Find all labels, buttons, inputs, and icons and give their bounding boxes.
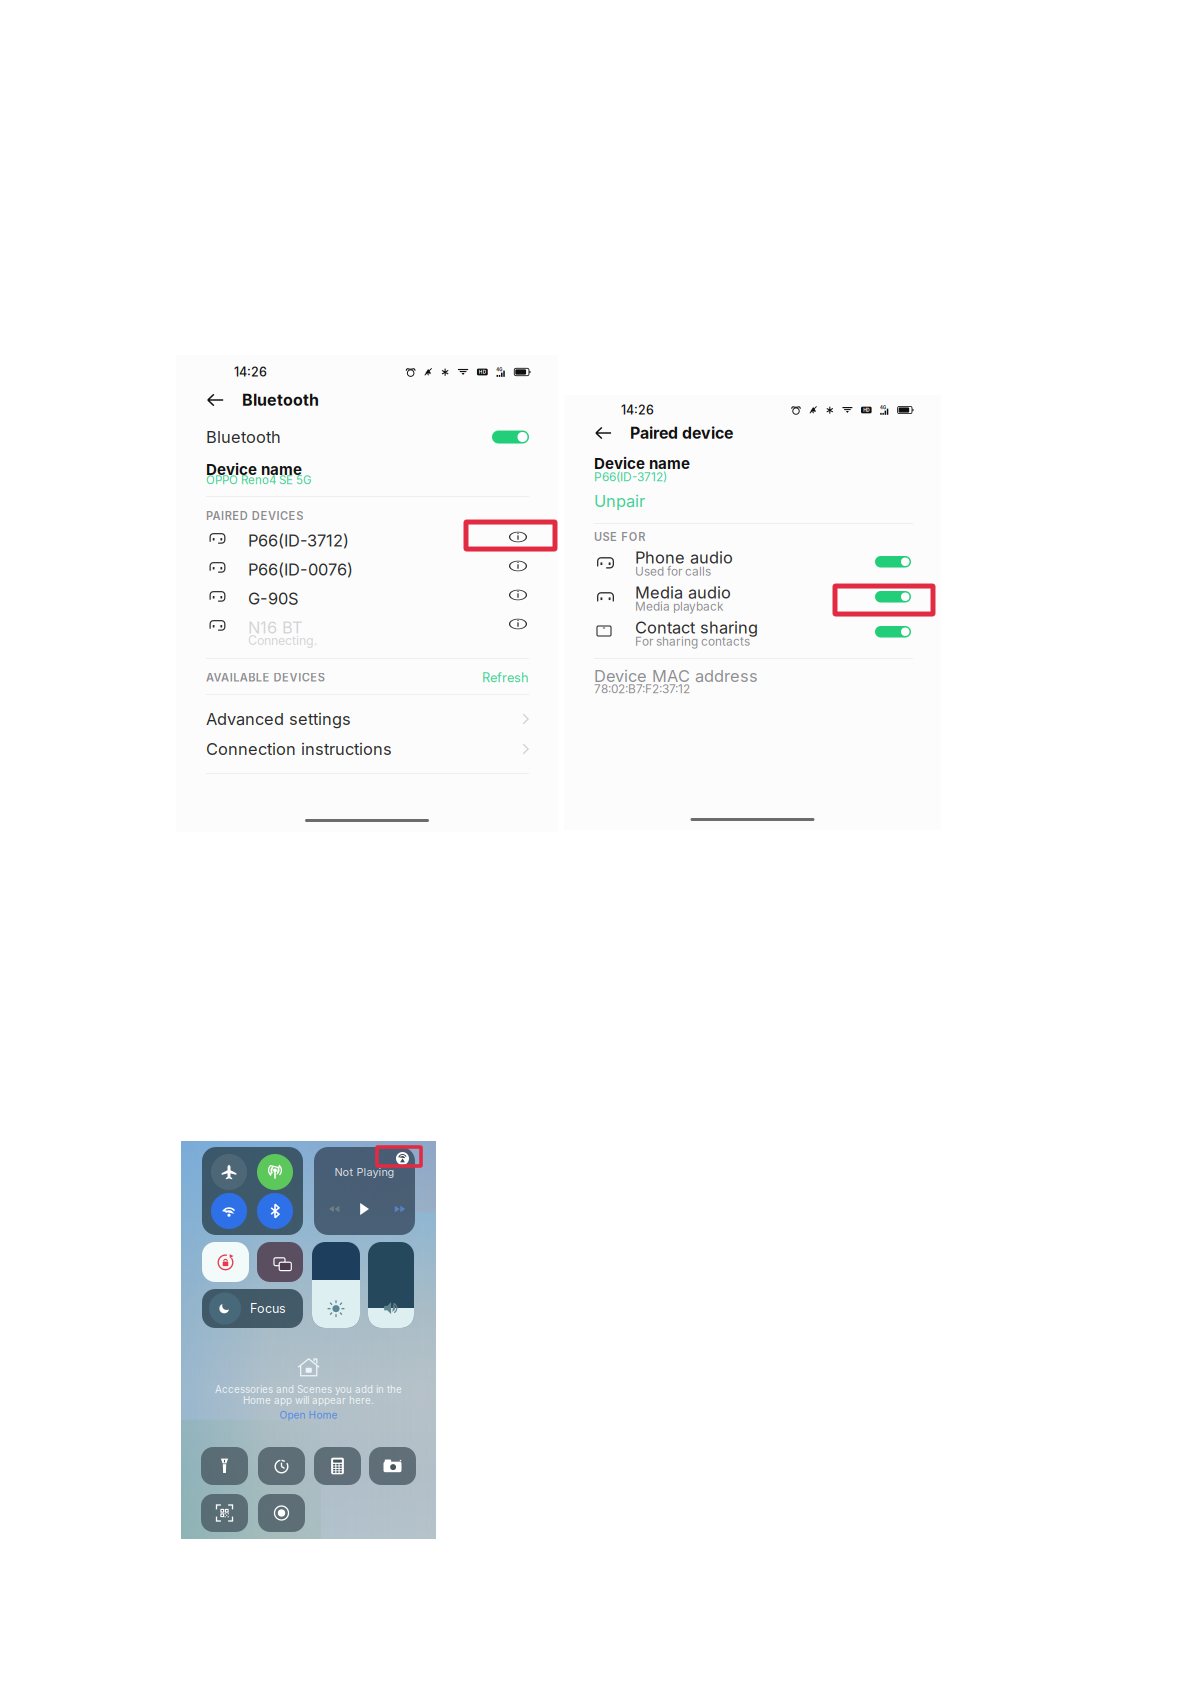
staticText: P66(ID-0076) [248, 560, 353, 579]
staticText: N16 BT [248, 618, 303, 637]
button[interactable]: Airplane mode [211, 1154, 247, 1190]
button[interactable]: Connection instructions [206, 735, 529, 763]
staticText: Phone audio [635, 548, 733, 567]
staticText: G-90S [248, 589, 299, 608]
button[interactable]: Advanced settings [206, 705, 529, 733]
button[interactable]: Next track [390, 1202, 410, 1216]
staticText: Bluetooth [206, 427, 281, 447]
staticText: Refresh [482, 670, 529, 685]
button[interactable]: QR code scanner [201, 1494, 248, 1532]
button[interactable]: Phone audio on [875, 556, 911, 567]
staticText: Bluetooth [242, 390, 319, 410]
button[interactable]: Flashlight [201, 1447, 248, 1485]
button[interactable]: Camera [369, 1447, 416, 1485]
staticText: USE FOR [594, 530, 645, 544]
staticText: Home app will appear here. [243, 1394, 374, 1406]
staticText: Device MAC address [594, 666, 758, 686]
button[interactable]: Wi-Fi [211, 1193, 247, 1229]
button[interactable]: Previous track [324, 1202, 344, 1216]
staticText: P66(ID-3712) [248, 531, 349, 550]
staticText: 78:02:B7:F2:37:12 [594, 682, 690, 696]
staticText: 4G [880, 405, 886, 410]
button[interactable]: Device info [507, 586, 529, 604]
staticText: Device name [594, 454, 690, 473]
button[interactable]: Device info [507, 615, 529, 633]
staticText: P66(ID-3712) [594, 470, 667, 484]
staticText: For sharing contacts [635, 634, 750, 649]
button[interactable]: Media audio on [875, 591, 911, 602]
button[interactable]: Bluetooth on [492, 430, 529, 443]
staticText: Connecting. [248, 633, 318, 648]
staticText: 4G [496, 367, 502, 372]
button[interactable]: Timer [258, 1447, 305, 1485]
staticText: Paired device [630, 423, 733, 443]
button[interactable]: Brightness [312, 1242, 360, 1328]
button[interactable]: Screen mirroring [257, 1242, 303, 1282]
button[interactable]: Device info [507, 557, 529, 575]
staticText: Unpair [594, 491, 645, 511]
staticText: Media playback [635, 599, 724, 614]
staticText: AVAILABLE DEVICES [206, 671, 325, 684]
staticText: Media audio [635, 583, 731, 602]
staticText: 14:26 [621, 402, 654, 417]
staticText: Contact sharing [635, 618, 758, 637]
button[interactable]: Calculator [314, 1447, 361, 1485]
staticText: Connection instructions [206, 739, 392, 759]
button[interactable]: Screen recording [258, 1494, 305, 1532]
staticText: Open Home [279, 1409, 337, 1421]
staticText: Not Playing [334, 1165, 394, 1179]
button[interactable]: Refresh [473, 671, 529, 684]
button[interactable]: Back [591, 422, 616, 444]
button[interactable]: AirPlay [396, 1152, 409, 1165]
button[interactable]: Open Home [181, 1409, 436, 1421]
staticText: PAIRED DEVICES [206, 509, 303, 523]
button[interactable]: Play [357, 1202, 371, 1216]
staticText: 14:26 [234, 364, 267, 380]
button[interactable]: Cellular data [257, 1154, 293, 1190]
button[interactable]: Back [203, 389, 228, 411]
staticText: HD [479, 369, 486, 375]
staticText: Focus [250, 1301, 286, 1316]
button[interactable]: Unpair [594, 493, 654, 509]
staticText: HD [863, 407, 869, 413]
button[interactable]: Volume [368, 1242, 414, 1328]
button[interactable]: Device info [507, 528, 529, 546]
staticText: Used for calls [635, 564, 711, 579]
staticText: Device name [206, 460, 302, 479]
staticText: Advanced settings [206, 709, 351, 729]
button[interactable]: Contact sharing on [875, 626, 911, 637]
button[interactable]: Rotation lock [202, 1242, 249, 1282]
button[interactable]: Focus [202, 1289, 303, 1328]
staticText: Accessories and Scenes you add in the [215, 1383, 402, 1395]
button[interactable]: Bluetooth [257, 1193, 293, 1229]
staticText: OPPO Reno4 SE 5G [206, 473, 312, 487]
